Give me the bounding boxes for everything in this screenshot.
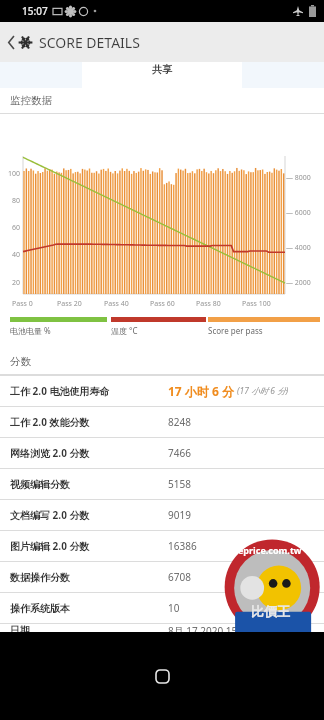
staticText: — 8000: [286, 173, 311, 183]
staticText: 分数: [10, 355, 31, 368]
staticText: 8248: [168, 415, 191, 429]
staticText: 数据操作分数: [10, 571, 70, 584]
staticText: 15:07: [22, 4, 48, 18]
staticText: 图片编辑 2.0 分数: [10, 539, 90, 553]
button[interactable]: 图片编辑 2.0 分数: [0, 531, 324, 561]
staticText: Pass 60: [150, 299, 175, 309]
staticText: 共享: [152, 63, 172, 76]
staticText: 电池电量 %: [10, 325, 51, 336]
button[interactable]: Back: [4, 28, 18, 56]
staticText: 20: [12, 278, 21, 288]
button[interactable]: 文档编写 2.0 分数: [0, 500, 324, 530]
button[interactable]: 操作系统版本: [0, 593, 324, 623]
staticText: 17 小时 6 分: [168, 383, 234, 399]
staticText: 100: [8, 169, 21, 179]
staticText: 温度 °C: [111, 325, 138, 336]
staticText: 视频编辑分数: [10, 478, 70, 491]
staticText: Pass 0: [12, 299, 33, 309]
staticText: — 4000: [286, 243, 311, 253]
staticText: Pass 40: [104, 299, 129, 309]
staticText: — 6000: [286, 208, 311, 218]
button[interactable]: 日期: [0, 624, 324, 632]
staticText: — 2000: [286, 278, 311, 288]
button[interactable]: 数据操作分数: [0, 562, 324, 592]
staticText: 7466: [168, 446, 191, 460]
staticText: 8月 17 2020 15:04: [168, 624, 252, 632]
staticText: 5158: [168, 477, 191, 491]
button[interactable]: 工作 2.0 电池使用寿命: [0, 376, 324, 406]
button[interactable]: Back: [0, 22, 324, 62]
staticText: 网络浏览 2.0 分数: [10, 446, 90, 460]
staticText: 40: [12, 250, 21, 260]
staticText: 9019: [168, 508, 191, 522]
staticText: 文档编写 2.0 分数: [10, 508, 90, 522]
staticText: 监控数据: [10, 94, 52, 107]
staticText: Pass 20: [57, 299, 82, 309]
button[interactable]: 工作 2.0 效能分数: [0, 407, 324, 437]
staticText: 操作系统版本: [10, 602, 70, 615]
staticText: Score per pass: [208, 325, 263, 336]
button[interactable]: 网络浏览 2.0 分数: [0, 438, 324, 468]
staticText: (17 小时 6 分): [237, 385, 289, 397]
staticText: 工作 2.0 效能分数: [10, 415, 90, 429]
button[interactable]: 共享: [82, 62, 242, 88]
staticText: 80: [12, 196, 21, 206]
staticText: 日期: [10, 624, 30, 632]
staticText: eprice.com.tw: [238, 544, 302, 556]
button[interactable]: Home: [145, 659, 179, 693]
button[interactable]: 视频编辑分数: [0, 469, 324, 499]
staticText: Pass 80: [196, 299, 221, 309]
staticText: 10: [168, 601, 180, 615]
staticText: SCORE DETAILS: [39, 33, 140, 52]
staticText: 工作 2.0 电池使用寿命: [10, 384, 110, 398]
staticText: 6708: [168, 570, 191, 584]
staticText: 比價王: [251, 603, 290, 619]
staticText: 60: [12, 223, 21, 233]
staticText: 16386: [168, 539, 197, 553]
staticText: Pass 100: [242, 299, 271, 309]
